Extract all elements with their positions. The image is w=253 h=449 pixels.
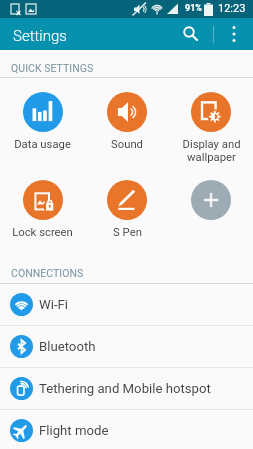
staticText: Sound [111,138,143,151]
button[interactable]: Sound [85,92,169,151]
button[interactable]: Display and wallpaper [169,92,253,164]
button[interactable]: Flight mode [0,410,253,449]
button[interactable]: More options [218,18,250,50]
button[interactable]: Wi-Fi [0,284,253,325]
staticText: CONNECTIONS [11,267,84,279]
staticText: S Pen [113,226,142,239]
staticText: Flight mode [39,423,109,438]
button[interactable] [169,180,253,239]
staticText: Bluetooth [39,339,96,354]
button[interactable]: Bluetooth [0,326,253,367]
staticText: 91% [185,3,202,14]
staticText: Wi-Fi [39,297,69,312]
staticText: 12:23 [218,2,246,15]
staticText: Display and wallpaper [182,138,241,164]
button[interactable]: Tethering and Mobile hotspot [0,368,253,409]
button[interactable]: Search [175,18,207,50]
button[interactable]: S Pen [85,180,169,239]
staticText: Data usage [14,138,71,151]
button[interactable]: Data usage [0,92,85,151]
staticText: QUICK SETTINGS [11,62,94,74]
staticText: Settings [13,27,67,45]
staticText: Tethering and Mobile hotspot [39,381,211,396]
staticText: Lock screen [12,226,73,239]
button[interactable]: Lock screen [0,180,85,239]
